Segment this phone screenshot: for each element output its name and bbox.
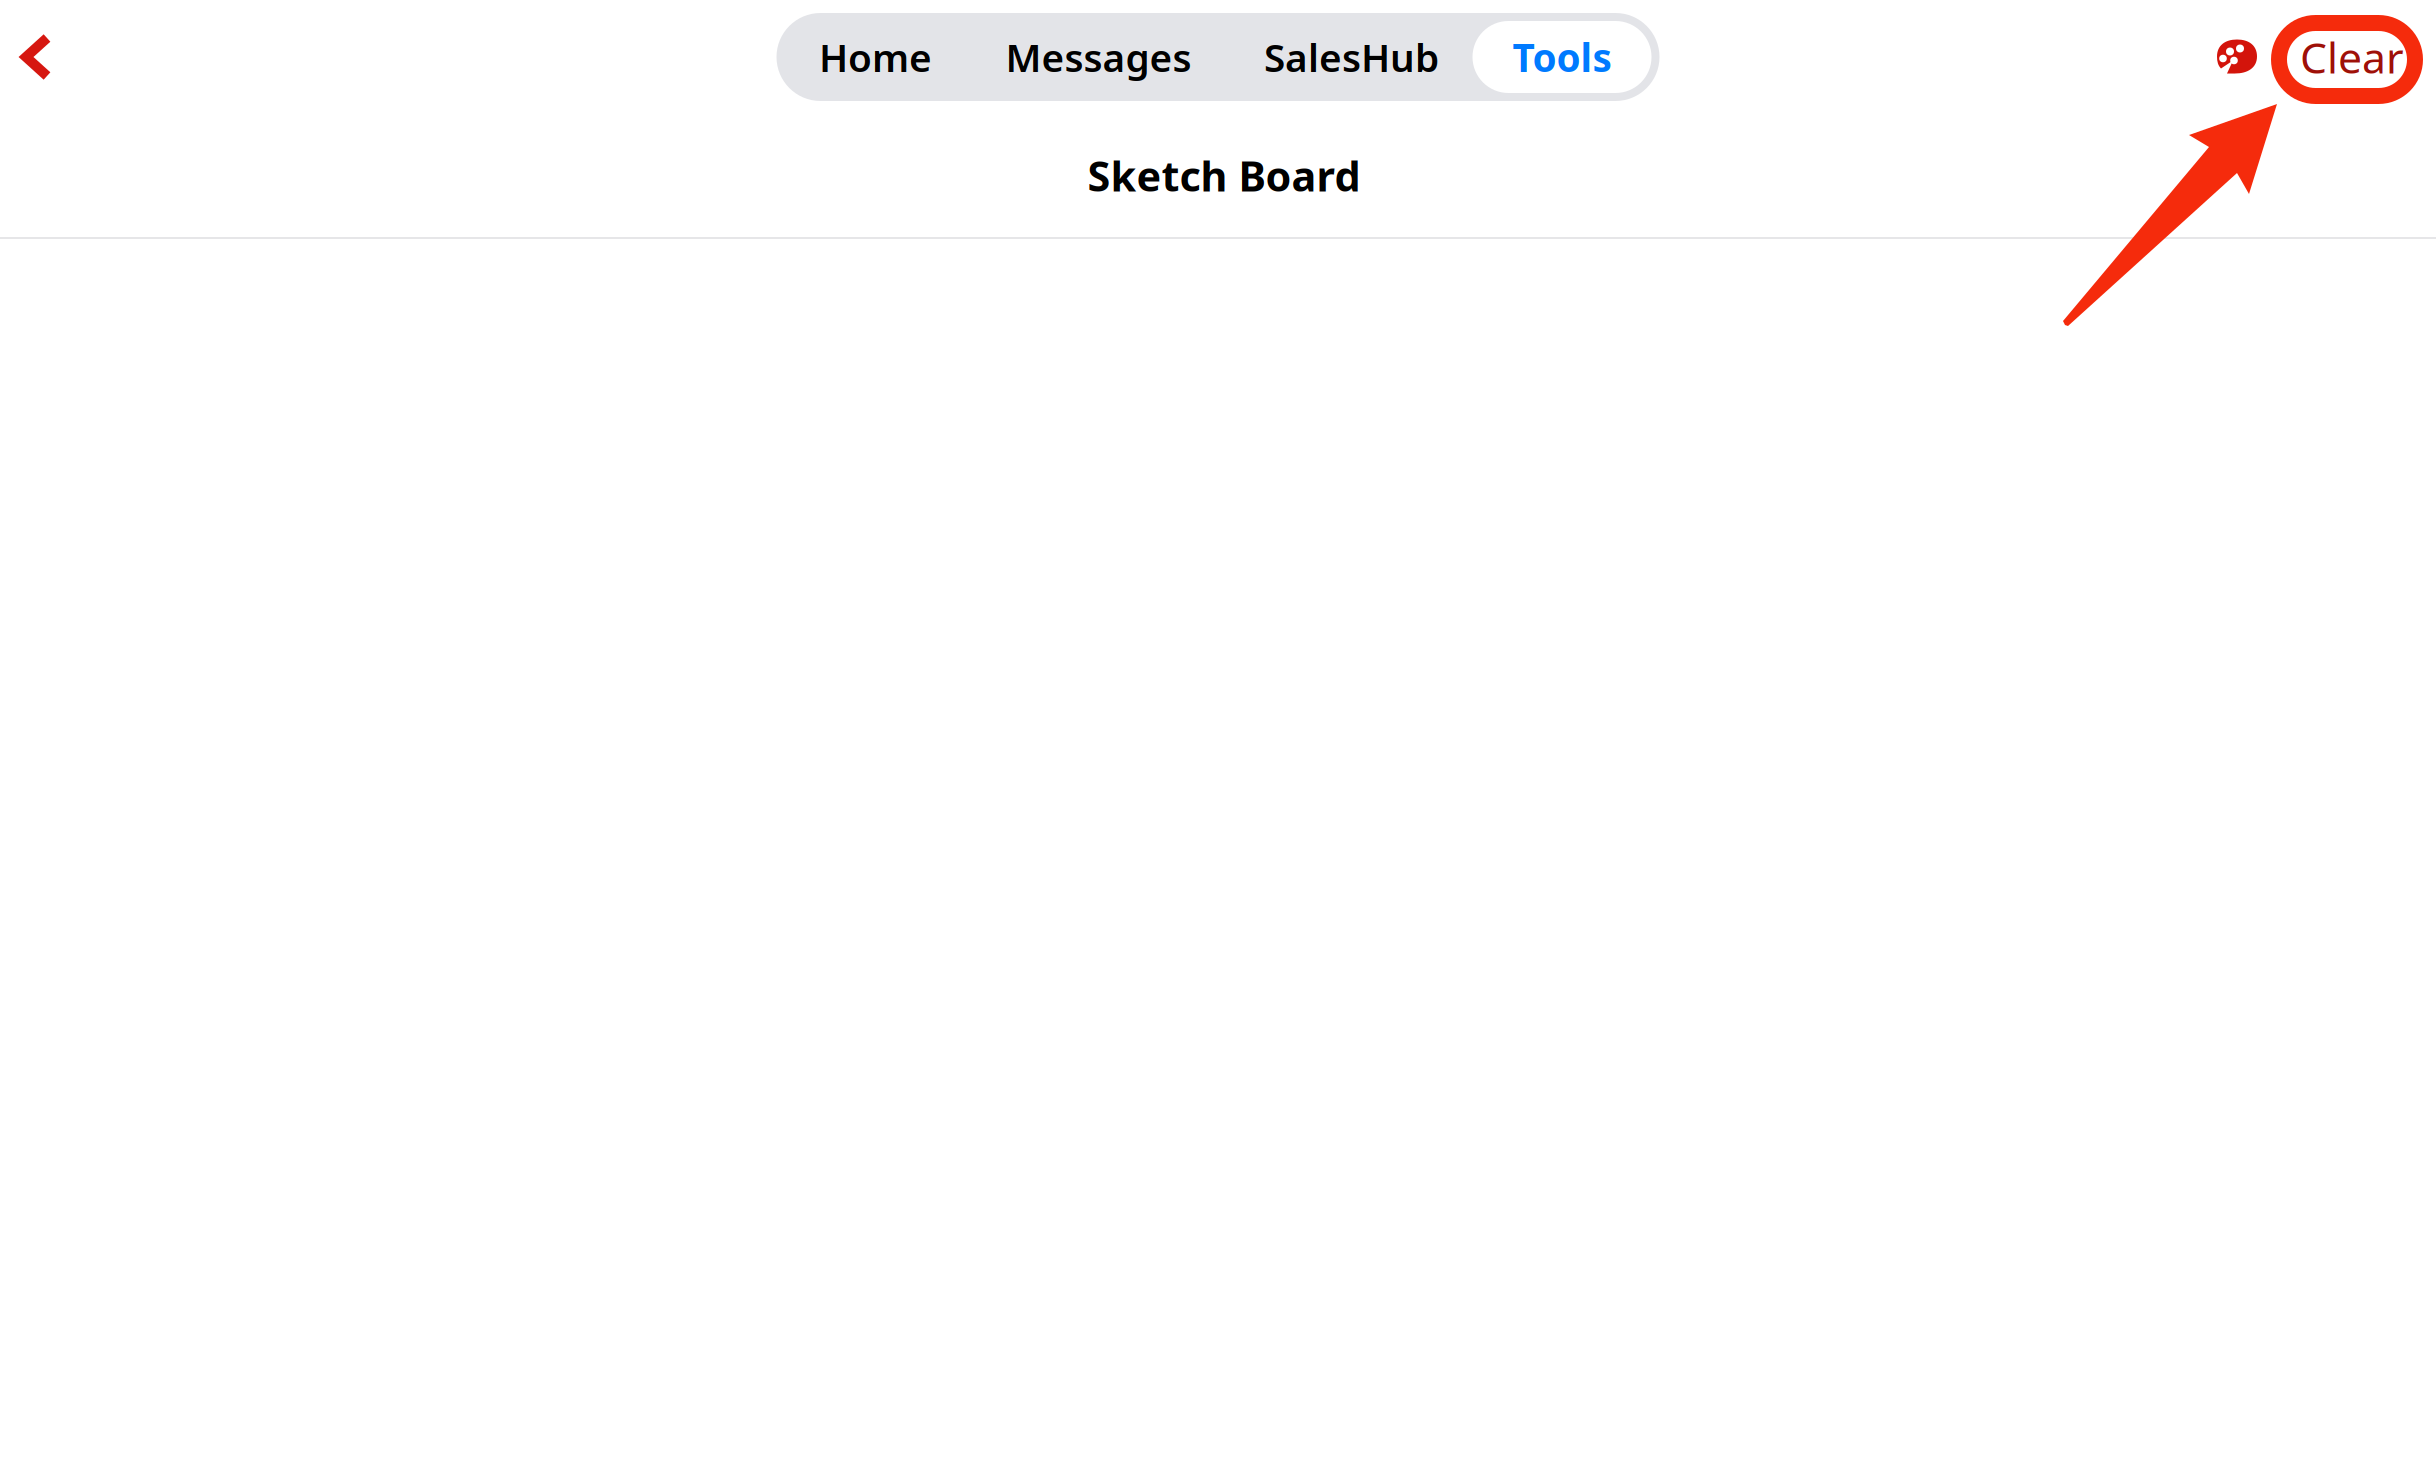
- button[interactable]: SalesHub: [1230, 21, 1472, 93]
- button[interactable]: Clear: [2272, 13, 2432, 101]
- staticText: Tools: [1512, 31, 1611, 83]
- button[interactable]: Tools: [1472, 21, 1651, 93]
- staticText: Clear: [2300, 29, 2404, 85]
- button[interactable]: Messages: [966, 21, 1230, 93]
- button[interactable]: Home: [784, 21, 966, 93]
- staticText: Sketch Board: [1087, 148, 1360, 203]
- staticText: Messages: [1005, 31, 1191, 83]
- button[interactable]: Color palette: [2193, 19, 2272, 94]
- staticText: Home: [819, 31, 932, 83]
- staticText: SalesHub: [1264, 31, 1439, 83]
